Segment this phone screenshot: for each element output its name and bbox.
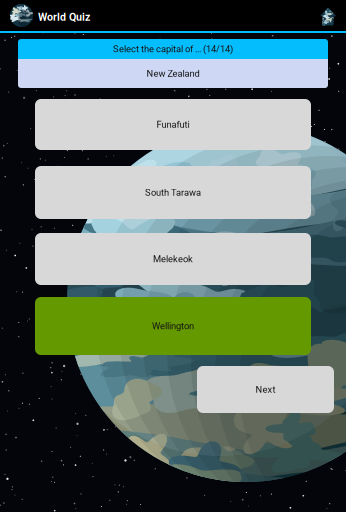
- button[interactable]: South Tarawa: [35, 166, 311, 219]
- staticText: Funafuti: [156, 119, 189, 130]
- staticText: Melekeok: [153, 253, 193, 264]
- button[interactable]: Home: [320, 5, 346, 25]
- button[interactable]: Next: [197, 366, 334, 413]
- staticText: Select the capital of ... (14/14): [113, 43, 233, 54]
- staticText: New Zealand: [146, 68, 199, 79]
- button[interactable]: Wellington: [35, 297, 311, 355]
- button[interactable]: Melekeok: [35, 233, 311, 285]
- staticText: World Quiz: [38, 11, 90, 23]
- staticText: Wellington: [152, 320, 194, 331]
- staticText: Next: [255, 384, 275, 395]
- staticText: South Tarawa: [145, 187, 201, 198]
- button[interactable]: Funafuti: [35, 99, 311, 150]
